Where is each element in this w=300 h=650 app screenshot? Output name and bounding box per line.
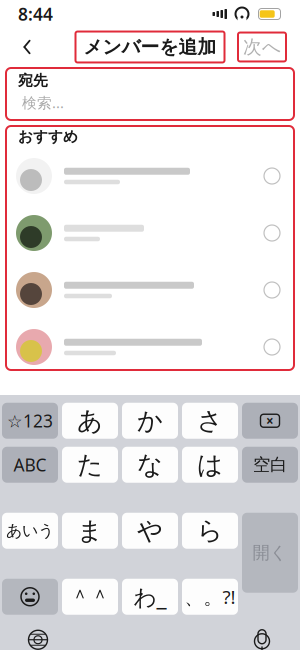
button[interactable]: は	[182, 447, 238, 483]
button[interactable]: 戻る	[14, 32, 40, 62]
staticText: あいう	[6, 521, 54, 541]
button[interactable]: ☆123	[2, 403, 58, 439]
staticText: おすすめ	[18, 127, 78, 145]
button[interactable]: 開く	[242, 513, 298, 593]
staticText: な	[137, 449, 163, 480]
staticText: メンバーを追加	[83, 35, 216, 58]
button[interactable]: キーボードを切り替え	[18, 623, 58, 650]
button[interactable]: 音声入力	[242, 623, 282, 650]
button[interactable]: ＾＾	[62, 579, 118, 615]
staticText: 、。?!	[184, 584, 235, 609]
button[interactable]: 空白	[242, 447, 298, 483]
staticText: わ_	[133, 582, 166, 612]
staticText: は	[197, 449, 223, 480]
staticText: ＾＾	[70, 584, 110, 609]
button[interactable]: や	[122, 513, 178, 549]
staticText: 次へ	[243, 35, 281, 58]
button[interactable]: 次へ	[238, 32, 286, 61]
button[interactable]: 検索...	[6, 89, 294, 115]
staticText: ら	[197, 515, 223, 546]
staticText: 空白	[253, 454, 287, 475]
staticText: ま	[77, 515, 103, 546]
staticText: ☆123	[7, 409, 53, 432]
staticText: さ	[197, 405, 223, 436]
button[interactable]: ま	[62, 513, 118, 549]
button[interactable]: ら	[182, 513, 238, 549]
staticText: 検索...	[22, 93, 64, 112]
button[interactable]	[6, 147, 294, 204]
button[interactable]: さ	[182, 403, 238, 439]
button[interactable]	[6, 261, 294, 318]
staticText: か	[137, 405, 163, 436]
button[interactable]: た	[62, 447, 118, 483]
button[interactable]: な	[122, 447, 178, 483]
staticText: ABC	[13, 453, 46, 476]
staticText: 8:44	[18, 2, 53, 25]
staticText: た	[77, 449, 103, 480]
staticText: や	[137, 515, 163, 546]
staticText: あ	[77, 405, 103, 436]
button[interactable]: ABC	[2, 447, 58, 483]
button[interactable]	[6, 318, 294, 375]
button[interactable]: あ	[62, 403, 118, 439]
staticText: 宛先	[18, 71, 48, 89]
staticText: ×	[266, 412, 274, 430]
staticText: 開く	[252, 542, 287, 563]
button[interactable]: 絵文字	[2, 579, 58, 615]
button[interactable]: か	[122, 403, 178, 439]
button[interactable]	[6, 204, 294, 261]
button[interactable]: 削除	[242, 403, 298, 439]
button[interactable]: わ_	[122, 579, 178, 615]
button[interactable]: 、。?!	[182, 579, 238, 615]
button[interactable]: あいう	[2, 513, 58, 549]
